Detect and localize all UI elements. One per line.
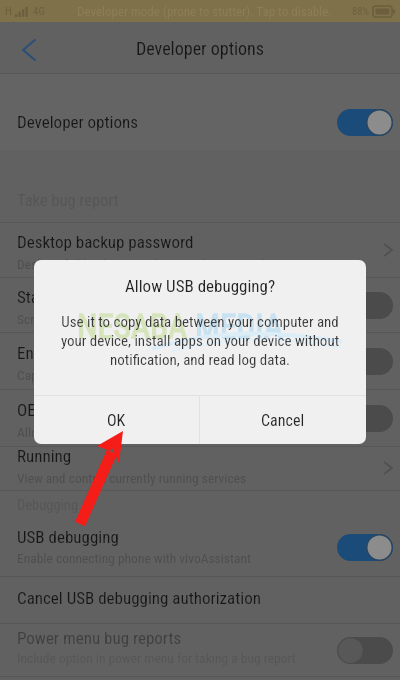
button[interactable]: Toggle off [337,292,393,319]
staticText: Capture all bluetooth HCI packets in a f… [17,367,237,383]
other: Open [382,459,394,477]
other: Open [382,241,394,259]
staticText: Screen will never sleep while charging [17,311,219,327]
staticText: Developer mode (prone to stutter). Tap t… [77,4,332,19]
staticText: Allow the bootloader to be unlocked [17,424,209,440]
button[interactable]: Back [6,24,52,74]
button[interactable]: Toggle off [337,405,393,432]
staticText: Cancel USB debugging authorization [17,588,261,608]
button[interactable]: Toggle on [337,534,393,561]
button[interactable] [0,624,400,676]
staticText: Allow USB debugging? [125,276,276,296]
staticText: Stay awake [17,287,93,307]
staticText: Running [17,446,72,466]
staticText: Cancel [261,411,305,430]
staticText: H [5,5,12,18]
staticText: NESABA [77,307,188,346]
staticText: Include option in power menu for taking … [17,650,296,666]
button[interactable]: Toggle on [337,109,393,136]
button[interactable]: Cancel [200,396,366,444]
staticText: Debugging [17,497,79,514]
button[interactable] [0,223,400,277]
staticText: MEDIA [195,307,283,346]
staticText: OK [107,411,126,430]
staticText: View and control currently running servi… [17,470,247,486]
staticText: Enable connecting phone with vivoAssista… [17,550,252,566]
button[interactable] [0,447,400,490]
staticText: 88% [352,5,370,17]
button[interactable] [0,577,400,623]
button[interactable]: Toggle off [337,348,393,375]
staticText: Developer options [17,112,138,132]
staticText: Developer options [136,38,265,59]
button[interactable]: Toggle off [337,637,393,664]
staticText: OEM unlocking [17,400,118,420]
button[interactable] [0,517,400,577]
staticText: Desktop full backups aren't currently pr… [17,256,265,272]
staticText: Enable Bluetooth HCI snoop log [17,343,229,363]
staticText: Power menu bug reports [17,628,182,648]
button[interactable] [0,278,400,332]
staticText: Take bug report [17,191,119,210]
button[interactable] [0,333,400,389]
button[interactable] [0,74,400,150]
button[interactable]: OK [34,396,199,444]
staticText: USB debugging [17,527,119,547]
staticText: 4G [33,5,45,18]
staticText: Use it to copy data between your compute… [48,313,352,369]
button[interactable] [0,390,400,446]
staticText: Desktop backup password [17,232,194,252]
